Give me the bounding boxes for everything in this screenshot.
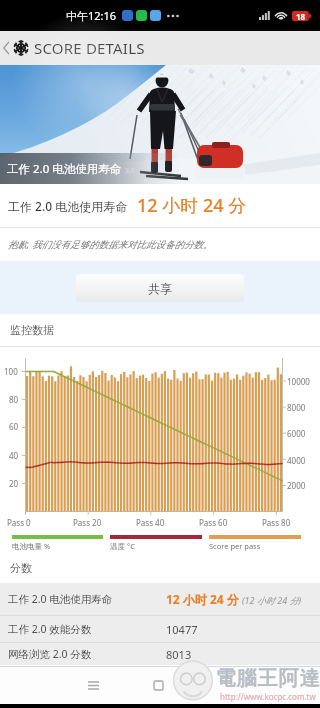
- staticText: Pass 60: [199, 517, 228, 528]
- button[interactable]: 共享: [76, 274, 244, 302]
- staticText: SCORE DETAILS: [34, 38, 145, 58]
- staticText: 8013: [166, 647, 192, 662]
- staticText: 工作 2.0 电池使用寿命: [8, 592, 113, 606]
- staticText: 分数: [10, 561, 32, 575]
- staticText: 4000: [287, 455, 306, 466]
- button[interactable]: Menu: [82, 667, 104, 704]
- staticText: 工作 2.0 效能分数: [8, 622, 92, 636]
- staticText: 温度 °C: [110, 541, 135, 551]
- staticText: 60: [9, 421, 19, 432]
- staticText: 工作 2.0 电池使用寿命: [8, 198, 128, 214]
- staticText: 中午12:16: [66, 8, 117, 23]
- staticText: (12 小时 24 分): [242, 594, 302, 606]
- staticText: 80: [9, 394, 19, 405]
- staticText: Pass 40: [136, 517, 165, 528]
- other: Back: [1, 31, 12, 65]
- staticText: 20: [9, 478, 19, 489]
- staticText: 12 小时 24 分: [166, 591, 239, 607]
- staticText: 100: [4, 366, 18, 377]
- button[interactable]: 工作 2.0 效能分数: [0, 616, 320, 642]
- button[interactable]: 工作 2.0 电池使用寿命: [0, 583, 320, 615]
- staticText: 监控数据: [10, 323, 54, 337]
- staticText: 10000: [287, 376, 310, 387]
- staticText: Score per pass: [209, 541, 261, 551]
- staticText: 3.0: [125, 166, 135, 176]
- staticText: 电池电量 %: [12, 541, 51, 551]
- staticText: 6000: [287, 428, 306, 439]
- staticText: Pass 80: [262, 517, 291, 528]
- staticText: 8000: [287, 402, 306, 413]
- staticText: Pass 0: [7, 517, 31, 528]
- button[interactable]: 网络浏览 2.0 分数: [0, 643, 320, 665]
- staticText: http://www.kocpc.com.tw: [220, 691, 316, 702]
- staticText: 工作 2.0 电池使用寿命: [7, 161, 122, 177]
- button[interactable]: Recents: [147, 667, 169, 704]
- staticText: 共享: [148, 281, 172, 296]
- staticText: 12 小时 24 分: [137, 193, 247, 218]
- staticText: Pass 20: [73, 517, 102, 528]
- staticText: 10477: [166, 622, 198, 637]
- staticText: 40: [9, 450, 19, 461]
- staticText: 网络浏览 2.0 分数: [8, 647, 92, 661]
- button[interactable]: Back: [0, 31, 320, 65]
- staticText: 抱歉, 我们没有足够的数据来对比此设备的分数。: [8, 238, 213, 251]
- staticText: 18: [296, 11, 306, 21]
- staticText: 2000: [287, 480, 306, 491]
- staticText: 電腦王阿達: [215, 666, 320, 691]
